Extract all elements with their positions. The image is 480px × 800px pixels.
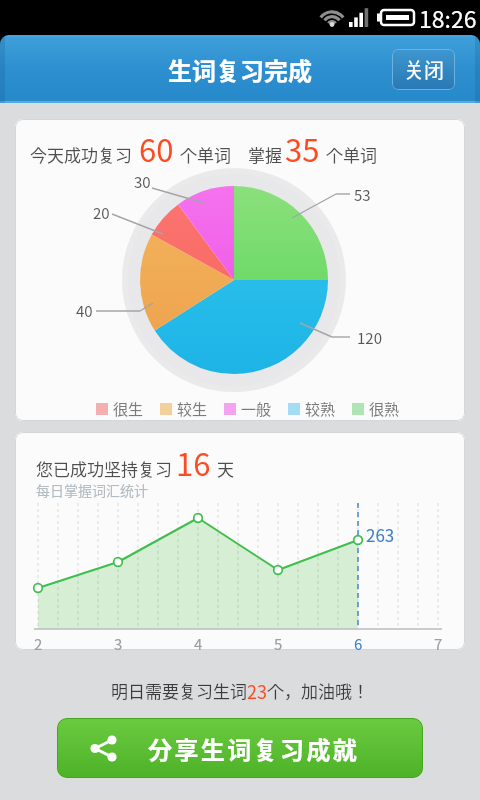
staticText: 一般 (241, 398, 272, 420)
staticText: 较生 (177, 398, 208, 420)
staticText: 60 (139, 126, 174, 171)
staticText: 今天成功复习 (30, 142, 132, 167)
staticText: 天 (217, 456, 234, 481)
staticText: 个，加油哦！ (267, 678, 369, 703)
staticText: 个单词 (180, 142, 231, 167)
staticText: 16 (176, 440, 211, 485)
staticText: 40 (76, 300, 93, 322)
staticText: 很熟 (369, 398, 400, 420)
staticText: 7 (434, 633, 443, 655)
staticText: 明日需要复习生词 (111, 678, 247, 703)
staticText: 很生 (113, 398, 144, 420)
staticText: 分享生词复习成就 (148, 731, 360, 766)
staticText: 20 (93, 202, 110, 224)
staticText: 个单词 (326, 142, 377, 167)
staticText: 关闭 (404, 55, 444, 84)
staticText: 30 (134, 171, 151, 193)
staticText: 2 (34, 633, 43, 655)
staticText: 较熟 (305, 398, 336, 420)
staticText: 掌握 (248, 142, 282, 167)
staticText: 120 (357, 327, 382, 349)
staticText: 您已成功坚持复习 (36, 456, 172, 481)
button[interactable]: 关闭 (392, 49, 455, 90)
staticText: 每日掌握词汇统计 (36, 480, 148, 500)
staticText: 生词复习完成 (168, 52, 312, 87)
staticText: 5 (274, 633, 283, 655)
staticText: 3 (114, 633, 123, 655)
staticText: 4 (194, 633, 203, 655)
staticText: 53 (354, 184, 371, 206)
staticText: 18:26 (419, 1, 477, 34)
staticText: 23 (247, 678, 267, 704)
staticText: 263 (366, 522, 395, 547)
staticText: 6 (354, 633, 363, 655)
button[interactable]: 分享生词复习成就 (57, 718, 423, 778)
staticText: 35 (285, 126, 320, 171)
